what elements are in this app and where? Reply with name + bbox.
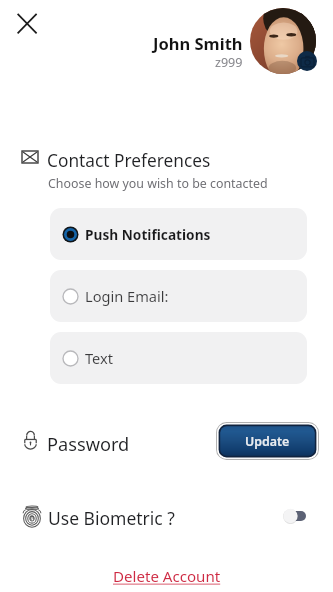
staticText: Use Biometric ? — [48, 506, 175, 530]
staticText: Contact Preferences — [47, 149, 211, 173]
button[interactable]: Push Notifications — [50, 208, 307, 260]
button[interactable]: Close — [9, 5, 45, 41]
button[interactable]: Update — [216, 422, 319, 460]
button[interactable]: Delete Account — [113, 566, 221, 587]
button[interactable]: Change profile photo — [297, 51, 317, 71]
staticText: Password — [47, 432, 130, 457]
staticText: Login Email: — [85, 286, 169, 306]
staticText: John Smith — [153, 32, 243, 54]
staticText: Text — [85, 348, 114, 368]
staticText: Choose how you wish to be contacted — [48, 175, 268, 192]
staticText: Update — [245, 433, 290, 450]
button[interactable]: Use Biometric toggle — [283, 506, 308, 526]
staticText: Push Notifications — [85, 225, 211, 244]
staticText: z999 — [215, 54, 243, 71]
button[interactable]: Text — [50, 332, 307, 384]
button[interactable]: Login Email: — [50, 270, 307, 322]
